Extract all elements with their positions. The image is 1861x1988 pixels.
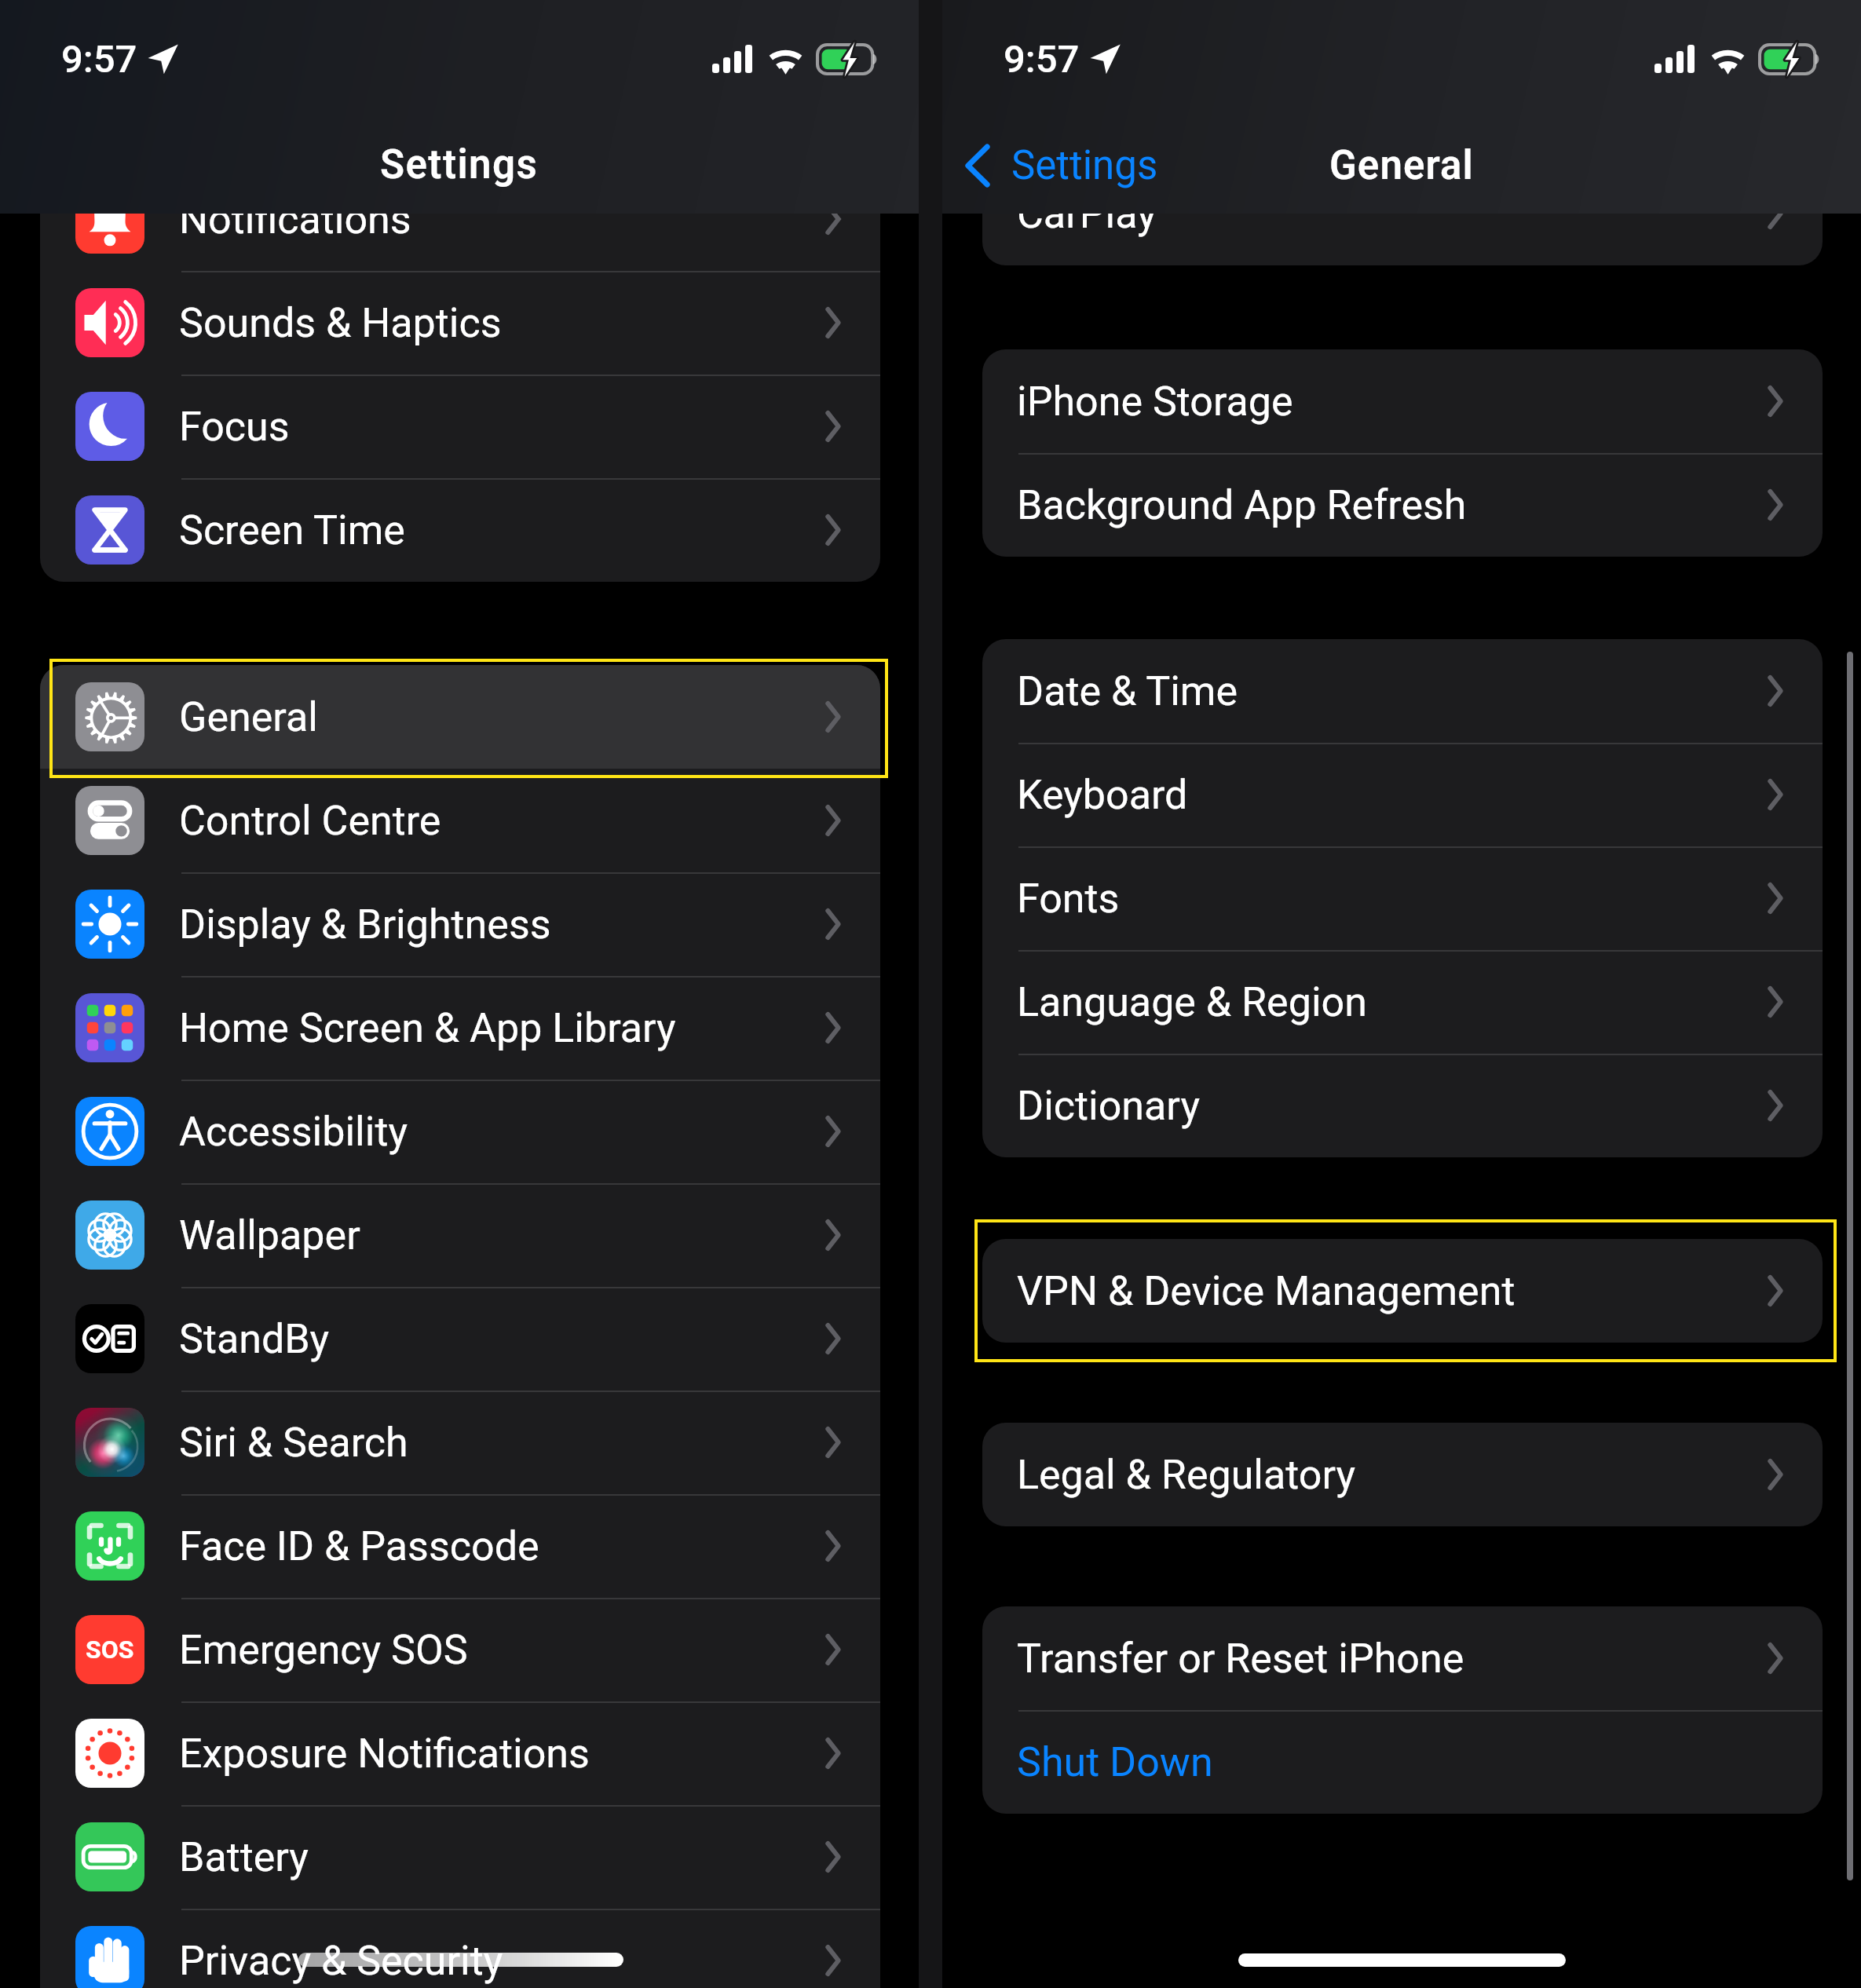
staticText: Screen Time (179, 506, 405, 554)
staticText: VPN & Device Management (1017, 1267, 1515, 1315)
button[interactable]: General (40, 665, 880, 769)
staticText: Exposure Notifications (179, 1730, 590, 1778)
button[interactable]: Date & Time (982, 639, 1823, 743)
button[interactable]: Notifications (40, 167, 880, 271)
button[interactable]: VPN & Device Management (982, 1239, 1823, 1343)
staticText: Fonts (1017, 875, 1120, 923)
staticText: Settings (380, 141, 539, 188)
button[interactable]: Screen Time (40, 478, 880, 582)
staticText: Background App Refresh (1017, 481, 1467, 529)
button[interactable]: Fonts (982, 846, 1823, 950)
staticText: iPhone Storage (1017, 378, 1293, 426)
button[interactable]: Siri & Search (40, 1391, 880, 1494)
button[interactable]: Display & Brightness (40, 872, 880, 976)
staticText: Focus (179, 403, 290, 451)
staticText: SOS (86, 1635, 134, 1665)
button[interactable]: AirPlay & Handoff (982, 0, 1823, 58)
staticText: Emergency SOS (179, 1626, 468, 1674)
button[interactable]: Battery (40, 1805, 880, 1909)
button[interactable]: Accessibility (40, 1080, 880, 1183)
staticText: Notifications (179, 196, 411, 243)
button[interactable]: StandBy (40, 1287, 880, 1391)
button[interactable]: Face ID & Passcode (40, 1494, 880, 1598)
staticText: Display & Brightness (179, 901, 551, 948)
button[interactable]: Control Centre (40, 769, 880, 872)
button[interactable]: Keyboard (982, 743, 1823, 846)
staticText: 9:57 (61, 37, 137, 82)
staticText: General (179, 693, 318, 741)
staticText: Home Screen & App Library (179, 1004, 676, 1052)
staticText: Accessibility (179, 1108, 408, 1156)
staticText: Sounds & Haptics (179, 299, 502, 347)
staticText: Keyboard (1017, 771, 1188, 819)
staticText: Date & Time (1017, 667, 1238, 715)
staticText: Siri & Search (179, 1419, 408, 1467)
button[interactable]: Sounds & Haptics (40, 271, 880, 375)
button[interactable]: Exposure Notifications (40, 1701, 880, 1805)
staticText: Legal & Regulatory (1017, 1451, 1356, 1499)
staticText: 9:57 (1004, 37, 1080, 82)
staticText: Language & Region (1017, 978, 1367, 1026)
staticText: Shut Down (1017, 1738, 1213, 1786)
button[interactable]: Focus (40, 375, 880, 478)
button[interactable]: Background App Refresh (982, 453, 1823, 557)
button[interactable]: iPhone Storage (982, 349, 1823, 453)
button[interactable]: Shut Down (982, 1710, 1823, 1814)
staticText: General (1329, 142, 1474, 189)
staticText: Dictionary (1017, 1082, 1200, 1130)
staticText: CarPlay (1017, 190, 1157, 238)
staticText: Privacy & Security (179, 1937, 503, 1985)
button[interactable]: SOS (40, 1598, 880, 1701)
staticText: StandBy (179, 1315, 330, 1363)
button[interactable]: Language & Region (982, 950, 1823, 1054)
button[interactable]: Wallpaper (40, 1183, 880, 1287)
staticText: Battery (179, 1833, 309, 1881)
button[interactable]: CarPlay (982, 162, 1823, 265)
staticText: Wallpaper (179, 1211, 360, 1259)
staticText: Settings (1011, 142, 1158, 189)
button[interactable]: Home Screen & App Library (40, 976, 880, 1080)
button[interactable]: Picture in Picture (982, 58, 1823, 162)
button[interactable]: Transfer or Reset iPhone (982, 1606, 1823, 1710)
button[interactable]: Privacy & Security (40, 1909, 880, 1988)
button[interactable]: Dictionary (982, 1054, 1823, 1157)
staticText: Transfer or Reset iPhone (1017, 1635, 1464, 1683)
staticText: Control Centre (179, 797, 441, 845)
staticText: Face ID & Passcode (179, 1522, 539, 1570)
button[interactable]: Back to Settings (965, 118, 1158, 214)
button[interactable]: Legal & Regulatory (982, 1423, 1823, 1526)
